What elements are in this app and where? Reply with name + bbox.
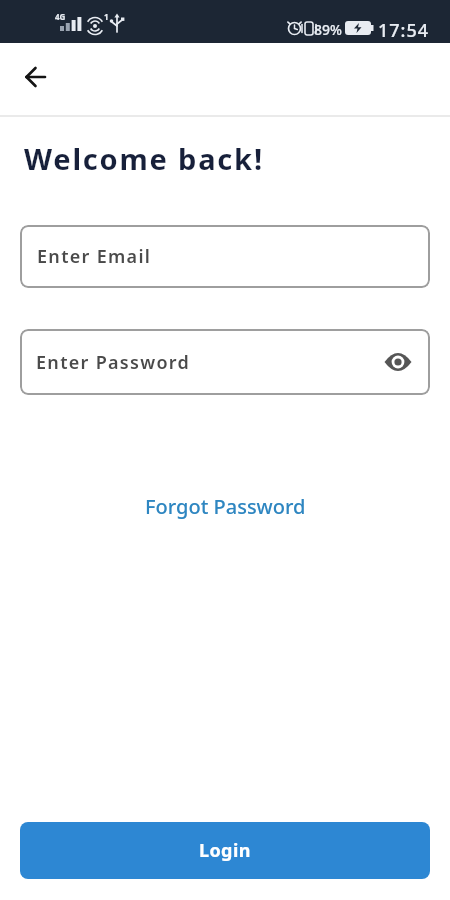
staticText: 17:54 xyxy=(378,18,430,43)
button[interactable] xyxy=(382,346,414,378)
staticText: Forgot Password xyxy=(145,493,306,520)
staticText: 4G xyxy=(55,11,66,22)
button[interactable]: Enter Email xyxy=(20,225,430,288)
button[interactable]: Forgot Password xyxy=(137,485,314,528)
button[interactable] xyxy=(16,58,56,98)
staticText: Welcome back! xyxy=(24,139,264,178)
staticText: 89% xyxy=(314,20,342,39)
staticText: Login xyxy=(199,838,251,863)
staticText: Enter Password xyxy=(36,350,191,375)
button[interactable]: Enter Password xyxy=(20,329,430,395)
staticText: Enter Email xyxy=(37,244,152,269)
button[interactable]: Login xyxy=(20,822,430,879)
staticText: 1 xyxy=(104,11,109,22)
